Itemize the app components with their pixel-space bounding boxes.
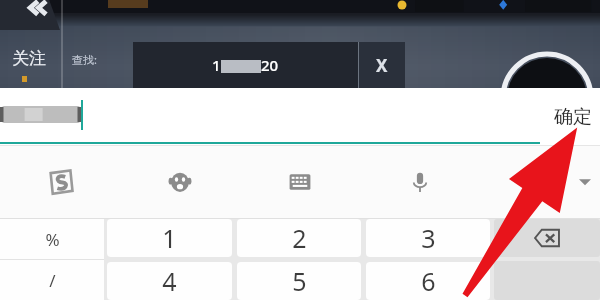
staticText: X (376, 54, 388, 77)
button[interactable]: 5 (237, 262, 361, 300)
button[interactable]: Search (480, 145, 600, 219)
staticText: / (49, 269, 56, 292)
staticText: 1 (162, 221, 177, 255)
button[interactable]: Backspace (494, 219, 600, 257)
staticText: 5 (292, 264, 307, 298)
button[interactable]: 1 (133, 42, 358, 88)
staticText: 4 (162, 264, 177, 298)
button[interactable]: Voice input (360, 145, 480, 219)
button[interactable]: 关注 (12, 48, 46, 69)
button[interactable]: Sogou logo (0, 145, 120, 219)
button[interactable] (0, 88, 540, 145)
button[interactable]: 2 (237, 219, 361, 257)
button[interactable]: 6 (366, 262, 490, 300)
staticText: % (45, 228, 60, 251)
button[interactable]: More (574, 171, 596, 193)
staticText: 确定 (554, 105, 592, 129)
staticText: 查找: (72, 52, 97, 67)
button[interactable]: 确定 (554, 105, 592, 129)
button[interactable]: / (0, 260, 104, 300)
button[interactable]: Enter (494, 261, 600, 300)
button[interactable]: Emoji (120, 145, 240, 219)
button[interactable]: 4 (107, 262, 232, 300)
button[interactable]: Keyboard layout (240, 145, 360, 219)
button[interactable]: % (0, 219, 104, 259)
staticText: 2 (292, 221, 307, 255)
staticText: 3 (421, 221, 436, 255)
staticText: 1 (212, 55, 221, 75)
button[interactable]: 1 (107, 219, 232, 257)
staticText: 20 (261, 55, 279, 75)
button[interactable]: Clear (359, 42, 405, 88)
button[interactable]: 3 (366, 219, 490, 257)
staticText: 6 (421, 264, 436, 298)
staticText: 关注 (12, 48, 46, 69)
